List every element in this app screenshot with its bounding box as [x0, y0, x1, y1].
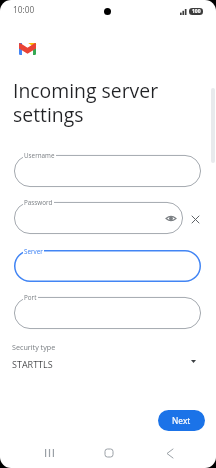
staticText: STARTTLS [12, 358, 53, 370]
button[interactable]: STARTTLS [0, 356, 216, 376]
staticText: Username [24, 151, 55, 160]
staticText: Incoming server settings [13, 77, 173, 128]
staticText: Password [24, 198, 53, 207]
button[interactable] [14, 202, 183, 234]
staticText: Next [172, 415, 191, 426]
button[interactable]: Recent apps [36, 440, 62, 466]
staticText: 100 [192, 8, 201, 15]
staticText: Security type [12, 342, 56, 352]
button[interactable] [14, 297, 201, 329]
staticText: Server [24, 247, 43, 256]
button[interactable]: Clear [188, 212, 202, 226]
button[interactable] [14, 250, 201, 282]
button[interactable]: Show password [163, 210, 179, 226]
button[interactable]: Next [158, 410, 205, 431]
staticText: 10:00 [13, 4, 35, 15]
button[interactable] [14, 155, 201, 187]
staticText: Port [24, 293, 37, 302]
button[interactable]: Back [157, 440, 183, 466]
button[interactable]: Home [96, 440, 122, 466]
